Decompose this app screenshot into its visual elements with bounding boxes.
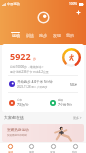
button[interactable]: 睡眠: [43, 93, 84, 112]
button[interactable]: 发现: [42, 143, 64, 153]
staticText: 运动: [8, 150, 14, 153]
button[interactable]: 运动: [12, 33, 20, 38]
staticText: 发现: [53, 33, 61, 38]
staticText: 100%: [69, 2, 78, 6]
staticText: 训练: [26, 33, 34, 38]
staticText: 室燃热身运动: [7, 128, 29, 133]
button[interactable]: Logo: [37, 11, 50, 24]
staticText: 大家都在练: [4, 115, 24, 120]
button[interactable]: 我的: [66, 33, 74, 38]
staticText: 发现: [50, 150, 56, 153]
staticText: 快速燃烧你的脂肪: [7, 134, 27, 137]
staticText: 开始跑步 4.0千米 5分钟: [17, 79, 53, 84]
button[interactable]: 我的: [64, 143, 86, 153]
staticText: 更多 >: [73, 116, 82, 120]
staticText: 2023-11-28 周二 户外跑步: [17, 85, 48, 89]
button[interactable]: 健康: [21, 143, 42, 153]
button[interactable]: 运动: [0, 143, 21, 153]
staticText: 目标10000步，继续加油！: [10, 65, 45, 69]
staticText: 中国移动: [7, 2, 20, 6]
staticText: 我的: [72, 150, 78, 153]
button[interactable]: 发现: [53, 33, 61, 38]
button[interactable]: 开始跑步 4.0千米 5分钟: [2, 76, 84, 92]
staticText: 步: [33, 57, 37, 61]
button[interactable]: 跑步: [39, 33, 47, 38]
staticText: 心率: [17, 98, 23, 101]
button[interactable]: 训练: [26, 33, 34, 38]
button[interactable]: 心率: [2, 93, 43, 112]
button[interactable]: Add: [74, 8, 82, 16]
button[interactable]: 室燃热身运动: [2, 124, 84, 142]
staticText: 我的: [66, 33, 74, 38]
button[interactable]: 更多 >: [73, 116, 82, 120]
staticText: 5922: [10, 50, 31, 62]
staticText: 健康: [29, 150, 35, 153]
staticText: 50岁: [70, 82, 78, 87]
staticText: 睡眠: [58, 98, 64, 101]
staticText: 7小时9分: [58, 102, 73, 107]
staticText: 跑步: [39, 33, 47, 38]
staticText: 运动: [12, 33, 20, 38]
staticText: 累计消耗236千卡 已走4.2公里: [10, 70, 49, 74]
staticText: 73次/分: [17, 102, 29, 107]
